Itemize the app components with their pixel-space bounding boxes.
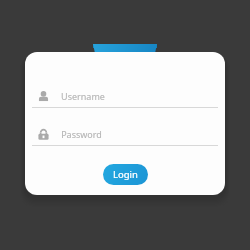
other: Username bbox=[37, 90, 50, 103]
button[interactable]: Username bbox=[32, 88, 218, 108]
button[interactable]: Account bbox=[93, 44, 157, 66]
staticText: Username bbox=[61, 90, 105, 102]
button[interactable]: Password bbox=[32, 126, 218, 146]
staticText: Account bbox=[108, 49, 143, 61]
staticText: Login bbox=[113, 168, 138, 181]
button[interactable]: Login bbox=[103, 164, 148, 185]
staticText: Password bbox=[61, 128, 102, 140]
other: Password bbox=[37, 128, 50, 141]
